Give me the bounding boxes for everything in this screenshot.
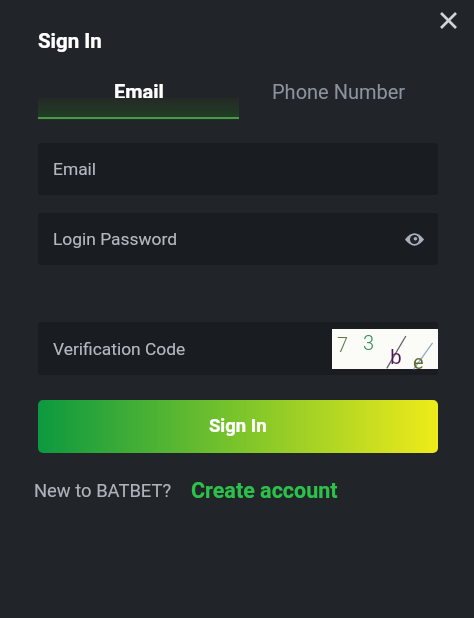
button[interactable]: Verification Code [38, 322, 438, 375]
staticText: e [413, 350, 424, 373]
staticText: b [390, 345, 402, 370]
button[interactable]: Close [432, 4, 464, 36]
button[interactable]: Phone Number [239, 76, 438, 120]
button[interactable]: Sign In [38, 400, 438, 453]
staticText: Email [114, 80, 164, 103]
staticText: New to BATBET? [34, 480, 172, 502]
button[interactable]: Create account [191, 478, 338, 503]
staticText: 3 [363, 331, 375, 354]
staticText: Phone Number [272, 80, 406, 103]
staticText: Sign In [38, 29, 102, 53]
button[interactable]: Login Password [38, 213, 438, 265]
staticText: Email [53, 159, 97, 179]
button[interactable]: Email [38, 76, 239, 120]
staticText: Verification Code [53, 339, 186, 359]
staticText: Create account [191, 478, 338, 503]
staticText: 7 [337, 333, 349, 356]
staticText: Sign In [209, 415, 267, 437]
button[interactable]: Email [38, 143, 438, 195]
staticText: Login Password [53, 229, 178, 249]
button[interactable]: Refresh verification code [332, 329, 438, 369]
button[interactable]: Show password [399, 224, 429, 254]
